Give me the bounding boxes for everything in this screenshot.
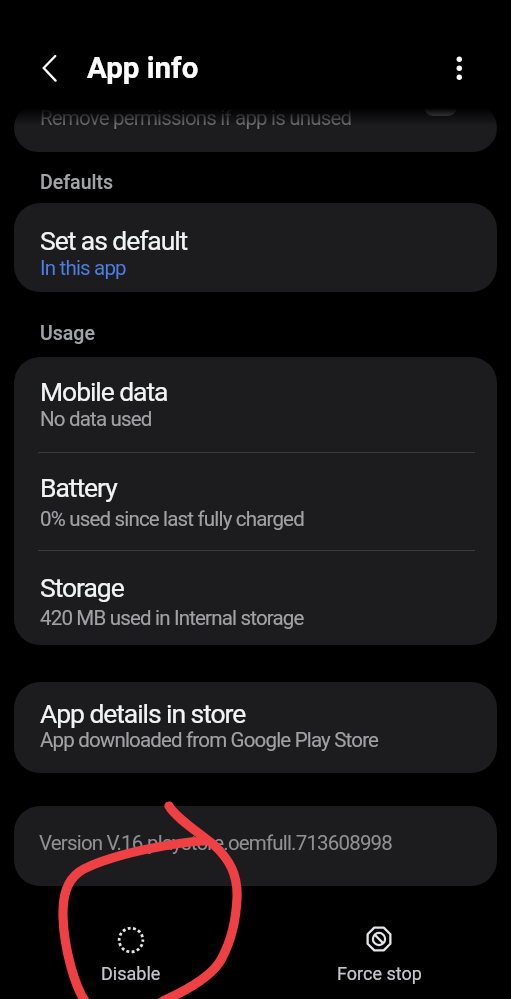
staticText: Force stop	[337, 963, 422, 984]
staticText: App details in store	[40, 698, 246, 729]
button[interactable]	[14, 551, 497, 645]
staticText: Set as default	[40, 225, 188, 256]
staticText: Version V.16.playstore.oemfull.713608998	[39, 831, 392, 855]
button[interactable]	[32, 50, 68, 86]
staticText: Usage	[40, 322, 95, 345]
staticText: Disable	[101, 963, 161, 984]
staticText: App info	[87, 51, 199, 86]
staticText: No data used	[40, 407, 152, 431]
button[interactable]: Force stop	[314, 915, 445, 993]
staticText: Mobile data	[40, 376, 168, 407]
staticText: In this app	[40, 256, 126, 280]
staticText: App downloaded from Google Play Store	[40, 728, 379, 752]
button[interactable]	[443, 50, 476, 86]
staticText: Battery	[40, 472, 117, 503]
button[interactable]	[14, 453, 497, 550]
button[interactable]	[14, 357, 497, 452]
staticText: 0% used since last fully charged	[40, 507, 304, 531]
button[interactable]: App details in store	[14, 682, 497, 773]
button[interactable]: Disable	[66, 915, 196, 993]
staticText: Remove permissions if app is unused	[40, 106, 352, 130]
staticText: Defaults	[40, 171, 114, 194]
staticText: Storage	[40, 572, 124, 603]
staticText: 420 MB used in Internal storage	[40, 606, 304, 630]
button[interactable]: Set as default	[14, 203, 497, 292]
